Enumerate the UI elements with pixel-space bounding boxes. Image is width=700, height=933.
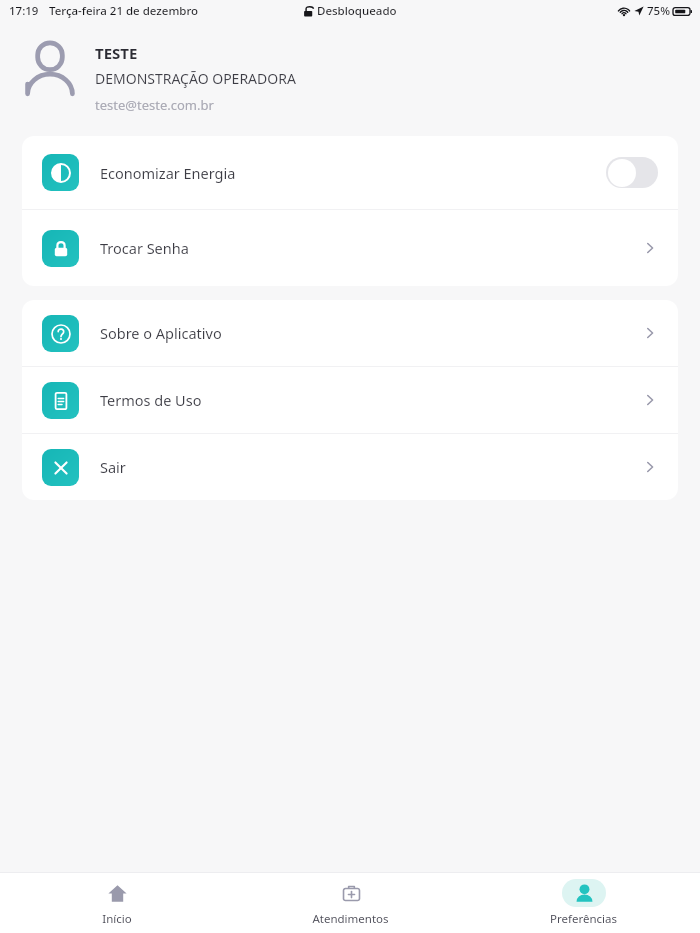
staticText: Sobre o Aplicativo — [100, 323, 222, 343]
staticText: Termos de Uso — [100, 390, 202, 410]
button[interactable]: Trocar Senha — [22, 210, 678, 286]
staticText: 17:19 — [9, 3, 39, 19]
button[interactable]: Início — [0, 873, 234, 933]
staticText: Início — [102, 911, 132, 927]
staticText: Trocar Senha — [100, 238, 189, 258]
staticText: Sair — [100, 457, 126, 477]
staticText: TESTE — [95, 43, 138, 63]
button[interactable]: Economizar Energia — [22, 136, 678, 209]
button[interactable]: Economizar Energia — [606, 157, 658, 188]
staticText: Atendimentos — [312, 911, 389, 927]
staticText: Desbloqueado — [317, 3, 397, 19]
button[interactable]: Sair — [22, 434, 678, 500]
staticText: Economizar Energia — [100, 163, 236, 183]
button[interactable]: Atendimentos — [234, 873, 467, 933]
staticText: DEMONSTRAÇÃO OPERADORA — [95, 69, 296, 88]
button[interactable]: Preferências — [467, 873, 700, 933]
button[interactable]: Sobre o Aplicativo — [22, 300, 678, 366]
staticText: 75% — [647, 3, 670, 19]
staticText: teste@teste.com.br — [95, 96, 214, 114]
staticText: Terça-feira 21 de dezembro — [49, 3, 199, 19]
staticText: Preferências — [550, 911, 617, 927]
button[interactable]: Termos de Uso — [22, 367, 678, 433]
